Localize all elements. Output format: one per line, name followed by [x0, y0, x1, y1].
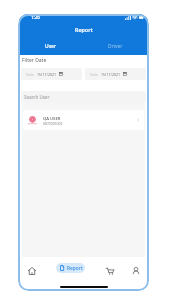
- staticText: Date: [90, 72, 98, 77]
- staticText: QA USER: [43, 116, 61, 122]
- button[interactable]: Home: [25, 264, 38, 277]
- button[interactable]: Date: [85, 68, 146, 80]
- staticText: 0872001002: [43, 121, 63, 126]
- staticText: Filter Date: [22, 57, 47, 64]
- button[interactable]: Search User: [21, 91, 146, 103]
- button[interactable]: Date: [21, 68, 82, 80]
- staticText: Report: [67, 265, 83, 272]
- staticText: Report: [75, 26, 93, 33]
- button[interactable]: Report: [56, 263, 85, 273]
- staticText: User: [45, 43, 57, 50]
- staticText: Search User: [24, 94, 50, 100]
- staticText: Driver: [108, 43, 123, 50]
- button[interactable]: Driver: [83, 38, 148, 55]
- staticText: 15/11/2021: [101, 72, 121, 77]
- button[interactable]: Profile: [129, 264, 142, 277]
- staticText: Date: [26, 72, 34, 77]
- staticText: 15/11/2021: [37, 72, 57, 77]
- staticText: 1:26: [31, 14, 40, 20]
- button[interactable]: User: [19, 38, 83, 55]
- button[interactable]: Orders: [103, 264, 116, 277]
- button[interactable]: QA USER: [23, 110, 144, 130]
